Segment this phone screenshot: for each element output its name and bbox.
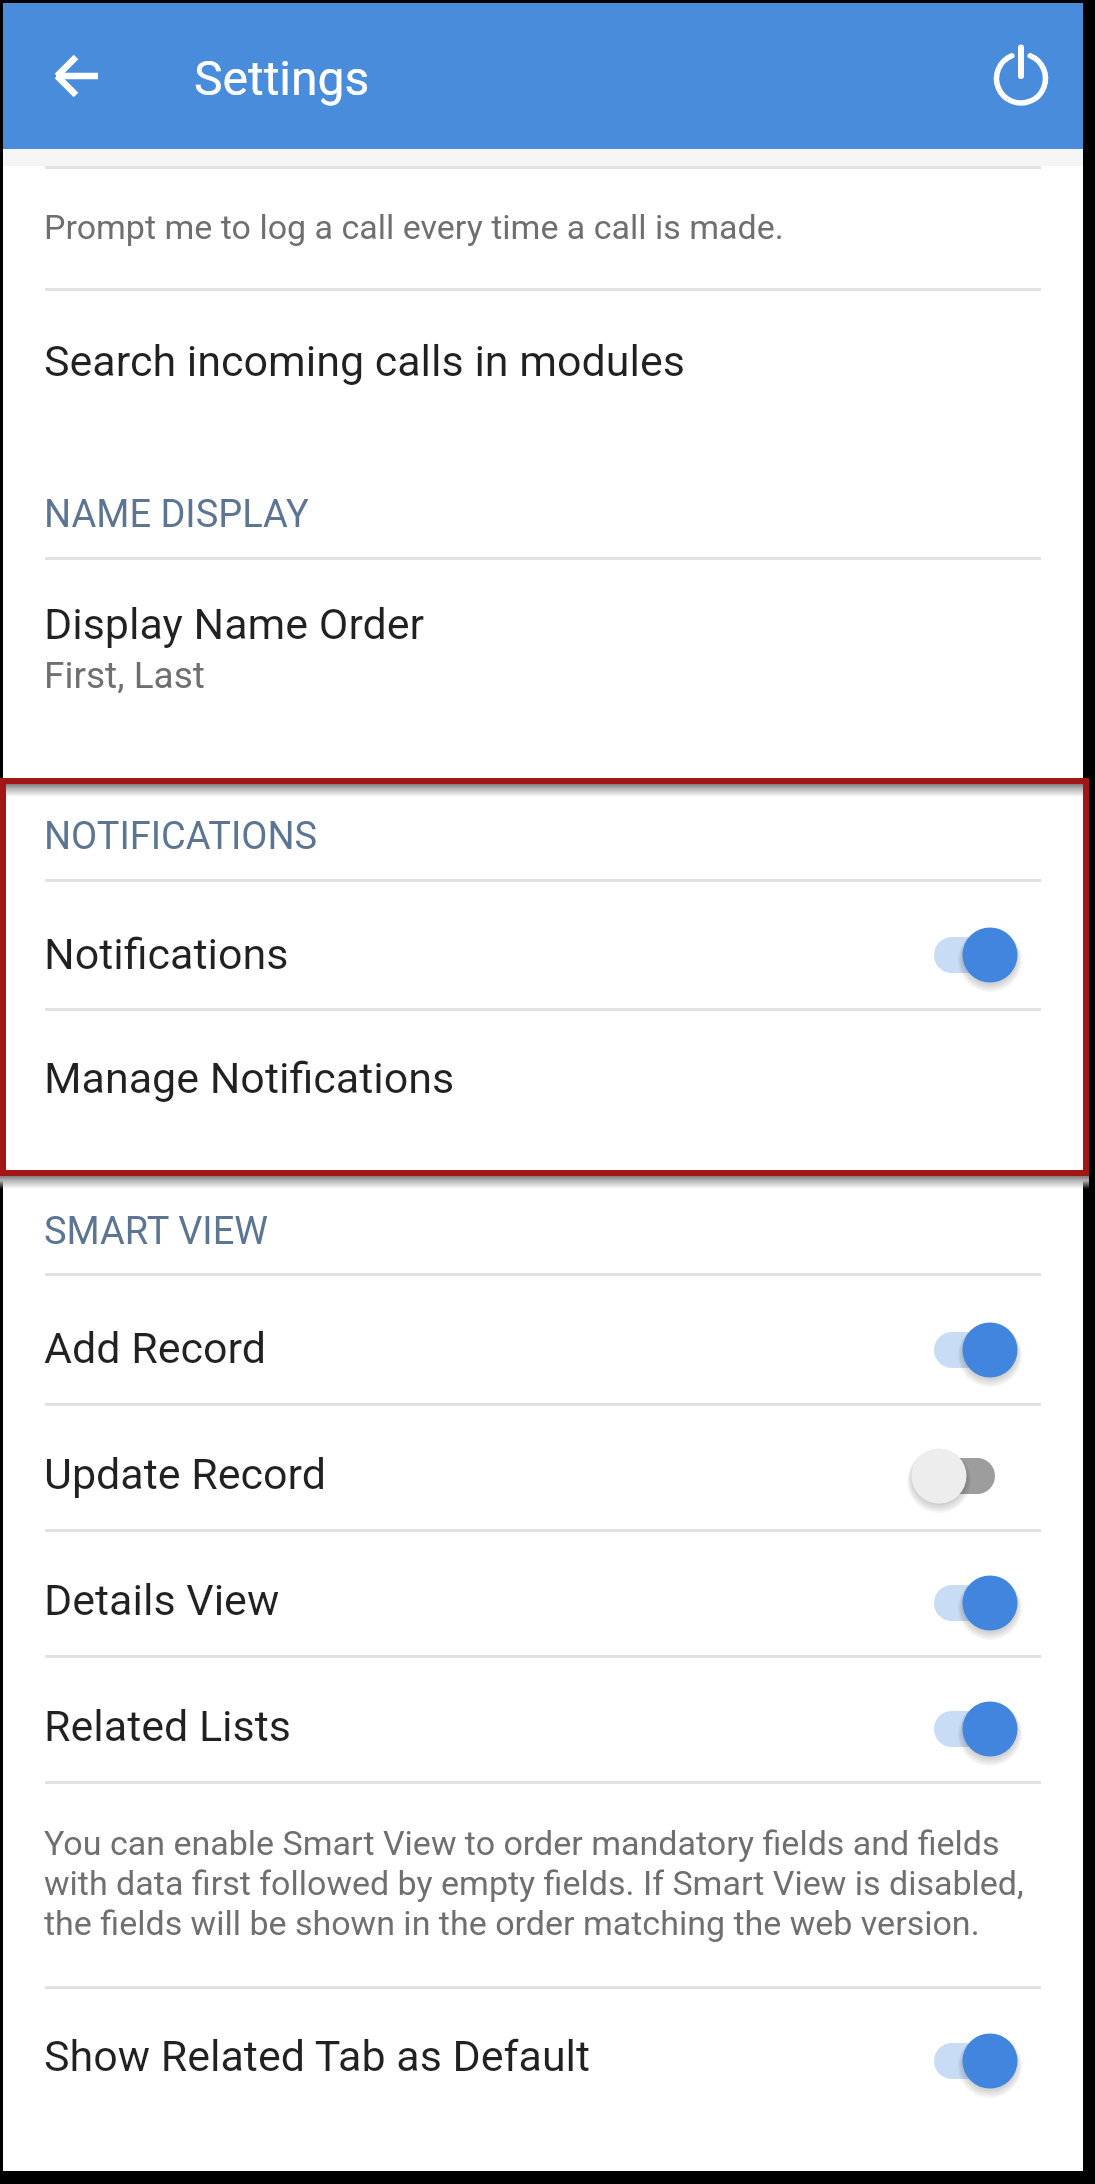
button[interactable]: Related Lists <box>3 1658 1083 1781</box>
button[interactable]: Show Related Tab as Default <box>3 1989 1083 2115</box>
staticText: Update Record <box>44 1449 326 1499</box>
button[interactable]: Manage Notifications <box>3 1011 1083 1140</box>
staticText: Prompt me to log a call every time a cal… <box>44 207 784 247</box>
button[interactable]: Display Name Order <box>3 560 1083 750</box>
button[interactable]: Back <box>23 22 131 130</box>
button[interactable]: Search incoming calls in modules <box>3 291 1083 430</box>
button[interactable]: Add Record <box>3 1276 1083 1403</box>
staticText: Add Record <box>44 1323 266 1373</box>
button[interactable]: Power <box>967 23 1075 131</box>
staticText: NOTIFICATIONS <box>44 814 318 859</box>
staticText: Manage Notifications <box>44 1053 455 1103</box>
staticText: Related Lists <box>44 1701 291 1751</box>
button[interactable]: Notifications <box>3 882 1083 1008</box>
staticText: NAME DISPLAY <box>44 492 309 537</box>
staticText: Display Name Order <box>44 599 425 649</box>
staticText: SMART VIEW <box>44 1209 268 1254</box>
staticText: Notifications <box>44 929 289 979</box>
staticText: First, Last <box>44 654 205 697</box>
staticText: Details View <box>44 1575 280 1625</box>
button[interactable]: Prompt me to log a call every time a cal… <box>3 169 1083 288</box>
button[interactable]: Update Record <box>3 1406 1083 1529</box>
button[interactable]: Details View <box>3 1532 1083 1655</box>
staticText: Search incoming calls in modules <box>44 336 685 386</box>
staticText: Show Related Tab as Default <box>44 2031 591 2081</box>
staticText: You can enable Smart View to order manda… <box>44 1823 1034 1943</box>
staticText: Settings <box>194 50 370 106</box>
